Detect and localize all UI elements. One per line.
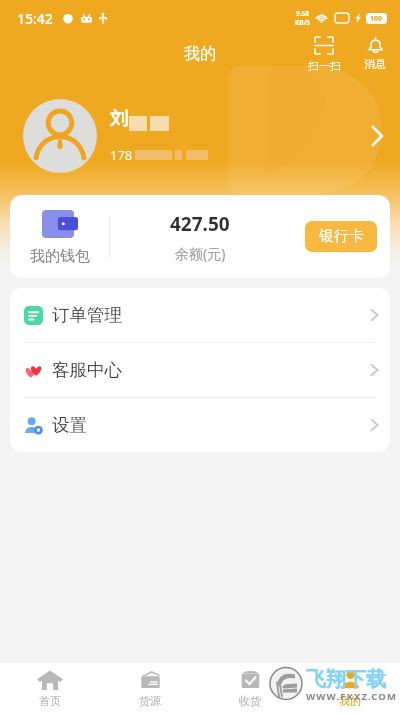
staticText: 我的 [339,694,361,708]
button[interactable]: 订单管理 [10,288,390,342]
staticText: 银行卡 [319,227,364,246]
staticText: 订单管理 [52,304,122,326]
button[interactable]: 我的钱包 [10,195,109,278]
button[interactable]: 刘 [0,85,400,187]
staticText: 100 [370,14,383,24]
staticText: 扫一扫 [308,59,341,72]
staticText: 首页 [39,694,61,708]
staticText: 客服中心 [52,359,122,381]
staticText: KB/S [295,18,310,27]
staticText: 设置 [52,414,87,436]
button[interactable]: 客服中心 [10,343,390,397]
button[interactable]: 设置 [10,398,390,452]
staticText: 我的钱包 [30,247,90,266]
staticText: 余额(元) [175,244,226,263]
staticText: 飞翔下载 [306,667,386,692]
button[interactable]: 银行卡 [305,221,377,252]
button[interactable]: 首页 [0,663,100,714]
staticText: 15:42 [17,9,53,28]
button[interactable]: 收货 [200,663,300,714]
button[interactable]: 扫一扫 [298,36,350,72]
button[interactable]: 我的 [300,663,400,714]
button[interactable]: 货源 [100,663,200,714]
staticText: 9.58 [296,9,309,18]
button[interactable]: 消息 [351,36,399,72]
staticText: 消息 [364,57,386,71]
staticText: 178 [110,146,133,164]
staticText: 刘 [110,108,128,131]
staticText: WWW.FXXZ.COM [306,690,397,703]
staticText: 我的 [184,44,216,64]
staticText: 427.50 [170,211,230,237]
staticText: 收货 [239,694,261,708]
staticText: 货源 [139,694,161,708]
